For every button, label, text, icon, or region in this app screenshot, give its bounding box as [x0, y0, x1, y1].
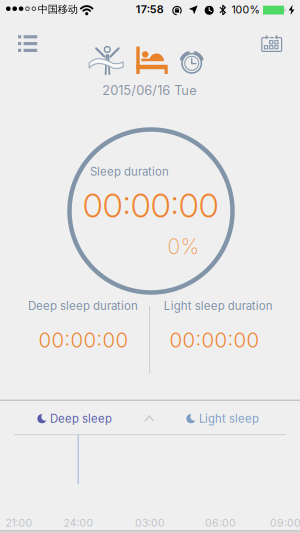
staticText: 24:00: [63, 517, 93, 529]
staticText: Light sleep: [199, 412, 259, 426]
staticText: Sleep duration: [90, 165, 169, 178]
button[interactable]: Sleep: [136, 47, 168, 74]
staticText: Light sleep duration: [164, 299, 273, 313]
staticText: 09:00: [270, 517, 300, 529]
staticText: 17:58: [136, 3, 164, 16]
button[interactable]: Sport: [89, 46, 123, 75]
staticText: 03:00: [135, 517, 165, 529]
staticText: Deep sleep duration: [28, 299, 138, 313]
staticText: 2015/06/16 Tue: [102, 83, 196, 98]
button[interactable]: Calendar: [262, 35, 282, 51]
staticText: Deep sleep: [50, 412, 112, 426]
button[interactable]: Deep sleep: [37, 412, 112, 426]
button[interactable]: Light sleep: [186, 412, 259, 426]
staticText: 00:00:00: [169, 328, 259, 352]
button[interactable]: Alarm: [179, 49, 205, 74]
staticText: 00:00:00: [38, 328, 128, 352]
staticText: 21:00: [5, 517, 32, 529]
button[interactable]: Collapse chart: [144, 414, 154, 422]
button[interactable]: Menu: [18, 35, 37, 52]
staticText: 00:00:00: [83, 185, 219, 225]
staticText: 0%: [167, 234, 199, 259]
staticText: 100%: [231, 3, 259, 16]
staticText: 中国移动: [38, 3, 78, 16]
staticText: 06:00: [205, 517, 236, 529]
